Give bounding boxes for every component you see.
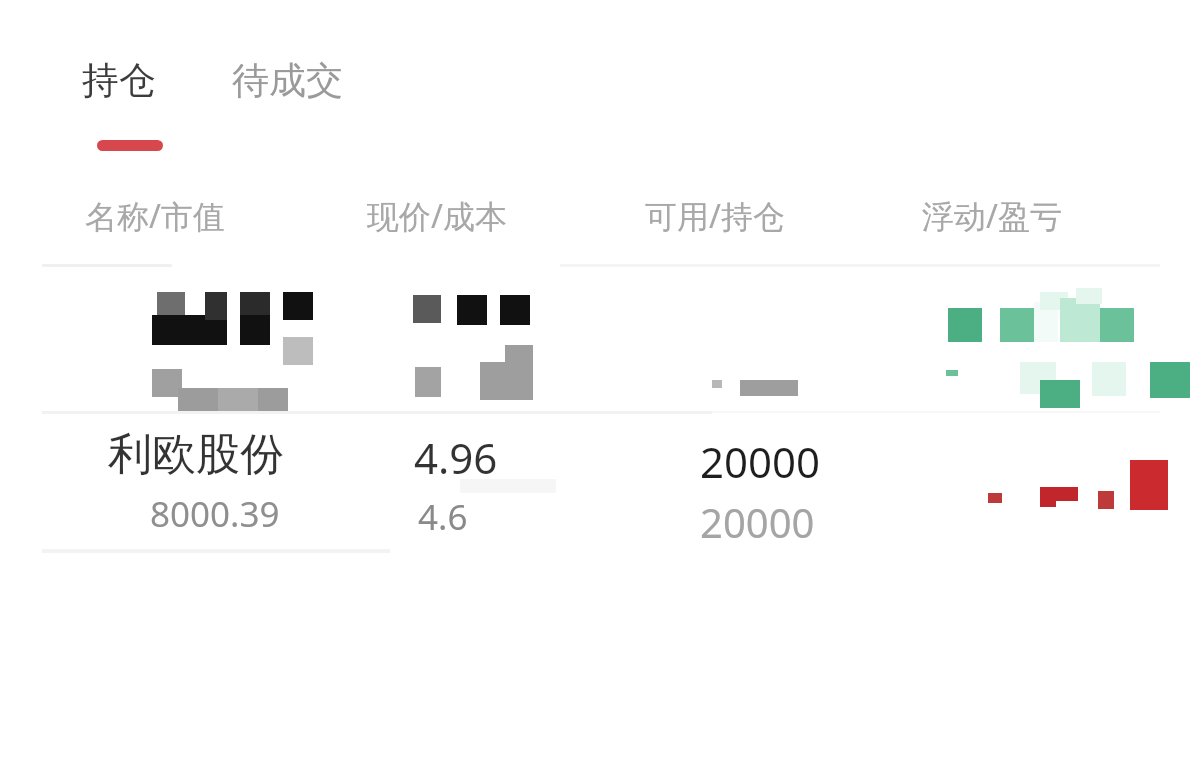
staticText: 20000 (700, 433, 821, 490)
button[interactable]: 利欧股份 (40, 415, 1160, 550)
button[interactable] (40, 270, 1160, 410)
staticText: 可用/持仓 (645, 194, 785, 238)
staticText: 20000 (700, 495, 815, 549)
staticText: 名称/市值 (85, 194, 225, 238)
staticText: 浮动/盈亏 (922, 194, 1062, 238)
staticText: 待成交 (232, 57, 343, 104)
staticText: 4.96 (414, 429, 498, 486)
staticText: 4.6 (418, 493, 468, 541)
staticText: 利欧股份 (108, 427, 284, 482)
staticText: 8000.39 (150, 490, 280, 538)
button[interactable]: 待成交 (228, 55, 347, 106)
button[interactable]: 持仓 (78, 55, 160, 106)
staticText: 现价/成本 (367, 194, 507, 238)
staticText: 持仓 (82, 57, 156, 104)
